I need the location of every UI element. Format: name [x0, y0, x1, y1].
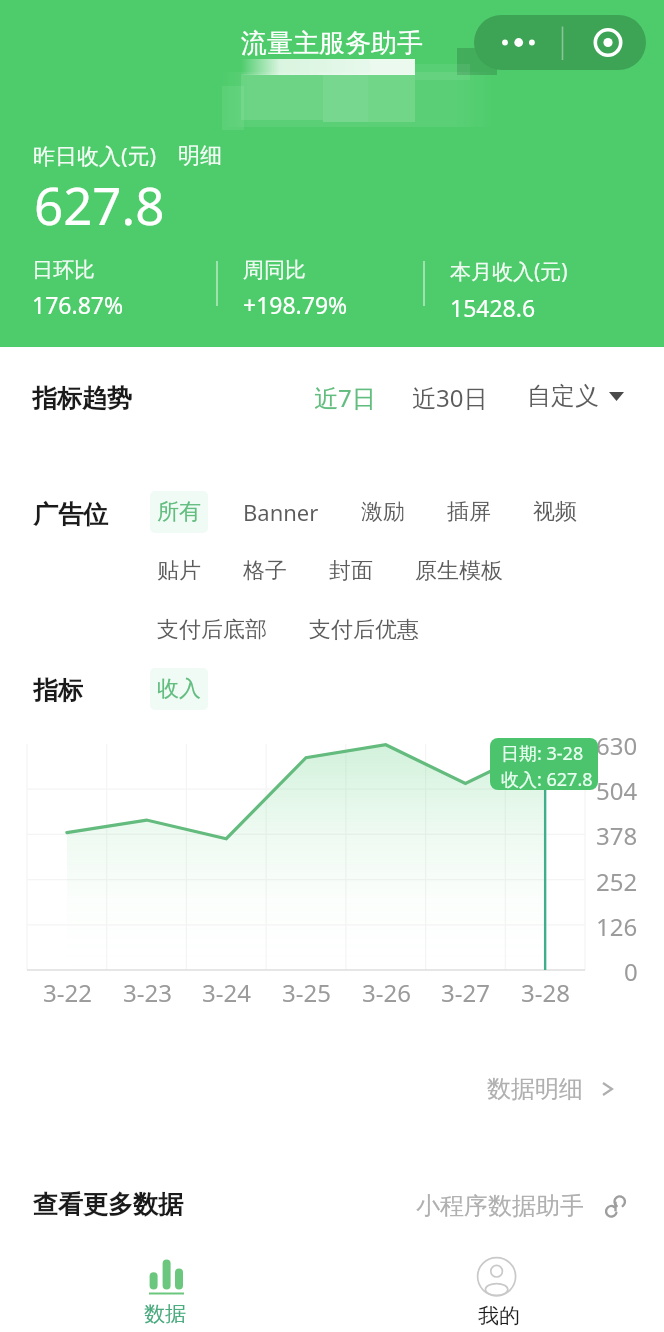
staticText: 指标趋势 — [32, 383, 132, 414]
staticText: 封面 — [329, 557, 373, 585]
staticText: 近30日 — [412, 381, 488, 414]
staticText: 日环比 — [32, 257, 95, 283]
staticText: 收入 — [157, 675, 201, 703]
staticText: 我的 — [478, 1303, 520, 1329]
staticText: 广告位 — [33, 499, 108, 530]
staticText: 本月收入(元) — [450, 257, 568, 286]
button[interactable]: 封面 — [322, 550, 380, 592]
staticText: Banner — [243, 497, 319, 527]
staticText: 3-24 — [202, 976, 251, 1006]
staticText: 激励 — [361, 498, 405, 526]
button[interactable]: 贴片 — [150, 550, 208, 592]
staticText: 视频 — [533, 498, 577, 526]
staticText: +198.79% — [243, 289, 348, 320]
staticText: 3-27 — [441, 976, 490, 1006]
staticText: 数据 — [144, 1301, 186, 1327]
staticText: 504 — [596, 774, 638, 804]
staticText: 15428.6 — [450, 292, 536, 323]
button[interactable]: 我的 — [437, 1250, 557, 1332]
staticText: 所有 — [157, 498, 201, 526]
staticText: 收入: 627.8 — [501, 767, 593, 790]
staticText: 126 — [596, 910, 638, 940]
staticText: 数据明细 — [487, 1074, 583, 1104]
staticText: 小程序数据助手 — [416, 1191, 584, 1221]
staticText: 自定义 — [527, 381, 599, 411]
staticText: 630 — [596, 729, 638, 759]
button[interactable]: 数据明细 — [479, 1066, 621, 1112]
staticText: 3-28 — [521, 976, 570, 1006]
staticText: 近7日 — [314, 381, 376, 414]
staticText: 3-25 — [282, 976, 331, 1006]
staticText: 支付后底部 — [157, 616, 267, 644]
staticText: 3-22 — [43, 976, 92, 1006]
staticText: 插屏 — [447, 498, 491, 526]
staticText: 252 — [596, 865, 638, 895]
staticText: 0 — [624, 955, 638, 985]
staticText: 原生模板 — [415, 557, 503, 585]
button[interactable]: 近7日 — [306, 373, 384, 422]
button[interactable]: 视频 — [526, 491, 584, 533]
staticText: 指标 — [33, 675, 83, 706]
button[interactable]: 支付后优惠 — [302, 609, 426, 651]
staticText: 176.87% — [32, 289, 124, 320]
button[interactable]: 格子 — [236, 550, 294, 592]
staticText: 查看更多数据 — [33, 1189, 183, 1220]
other: Mini program — [605, 1196, 626, 1217]
staticText: 明细 — [178, 142, 222, 170]
button[interactable]: Banner — [236, 490, 326, 534]
staticText: 格子 — [243, 557, 287, 585]
staticText: 627.8 — [34, 170, 165, 239]
button[interactable]: 明细 — [178, 142, 222, 170]
button[interactable]: 插屏 — [440, 491, 498, 533]
button[interactable]: 收入 — [150, 668, 208, 710]
button[interactable]: 激励 — [354, 491, 412, 533]
staticText: 流量主服务助手 — [241, 27, 423, 60]
button[interactable]: 数据 — [106, 1250, 226, 1332]
staticText: 3-23 — [123, 976, 172, 1006]
staticText: 昨日收入(元) — [33, 140, 157, 170]
staticText: 支付后优惠 — [309, 616, 419, 644]
button[interactable]: 原生模板 — [408, 550, 510, 592]
button[interactable]: 所有 — [150, 491, 208, 533]
staticText: 378 — [596, 819, 638, 849]
staticText: 日期: 3-28 — [501, 741, 584, 766]
button[interactable]: 支付后底部 — [150, 609, 274, 651]
button[interactable]: 自定义 — [519, 373, 632, 419]
button[interactable]: More options — [474, 15, 646, 70]
staticText: 3-26 — [362, 976, 411, 1006]
button[interactable]: 近30日 — [404, 373, 496, 422]
button[interactable]: 小程序数据助手 — [408, 1183, 634, 1229]
staticText: 周同比 — [243, 257, 306, 283]
staticText: 贴片 — [157, 557, 201, 585]
